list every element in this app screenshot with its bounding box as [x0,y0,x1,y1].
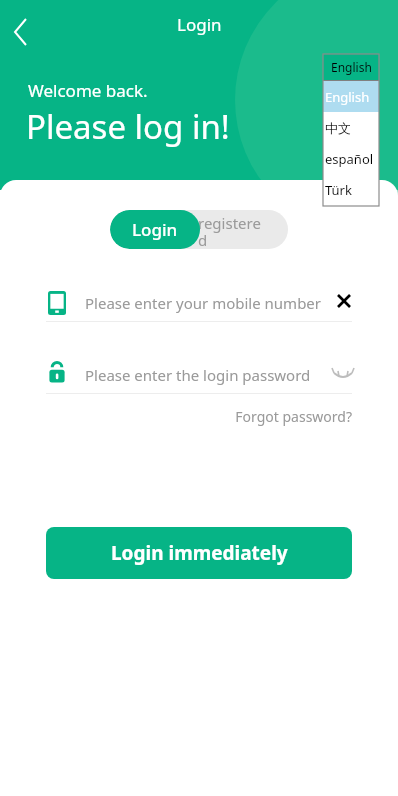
button[interactable]: registere d [198,213,284,249]
button[interactable]: Please enter the login password [46,355,352,394]
staticText: English [331,59,372,75]
staticText: Login immediately [111,540,288,566]
button[interactable]: español [323,143,379,174]
staticText: Forgot password? [235,407,352,426]
button[interactable]: Show password [330,361,356,387]
staticText: Welcome back. [28,79,148,102]
button[interactable]: Back [0,5,44,49]
button[interactable]: 中文 [323,112,379,143]
button[interactable]: Please enter your mobile number [46,283,352,322]
staticText: Türk [325,181,352,199]
staticText: Please enter the login password [85,365,311,385]
staticText: Please enter your mobile number [85,293,322,313]
button[interactable]: English [323,54,379,80]
button[interactable]: English [323,81,379,112]
staticText: español [325,150,374,168]
button[interactable]: Login immediately [46,527,352,579]
staticText: Login [132,218,178,241]
button[interactable]: Login [110,210,200,249]
staticText: English [325,88,370,106]
button[interactable]: Türk [323,174,379,205]
staticText: 中文 [325,120,351,136]
staticText: Login [177,13,222,36]
button[interactable]: Forgot password? [220,403,352,429]
staticText: Please log in! [26,104,230,149]
button[interactable]: Clear [332,289,356,313]
